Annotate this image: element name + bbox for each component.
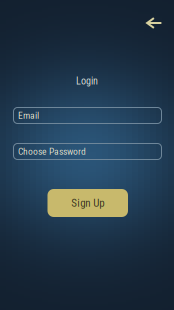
button[interactable]: Sign Up <box>47 189 128 217</box>
staticText: Login <box>76 75 98 87</box>
staticText: Sign Up <box>71 197 104 209</box>
button[interactable]: Choose Password <box>13 143 161 159</box>
button[interactable]: Back <box>139 11 169 35</box>
staticText: Choose Password <box>18 146 86 157</box>
staticText: Email <box>18 110 39 121</box>
button[interactable]: Email <box>13 107 161 123</box>
